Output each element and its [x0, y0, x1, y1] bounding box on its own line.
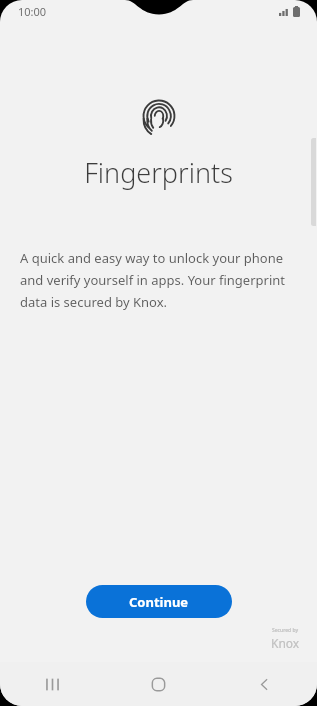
- other: Fingerprint: [142, 99, 176, 133]
- button[interactable]: Back: [211, 662, 317, 706]
- staticText: Secured by: [272, 627, 299, 634]
- staticText: 10:00: [18, 4, 47, 19]
- button[interactable]: Home: [105, 662, 211, 706]
- staticText: Knox: [271, 635, 300, 651]
- staticText: Continue: [129, 593, 189, 611]
- staticText: A quick and easy way to unlock your phon…: [20, 249, 301, 311]
- button[interactable]: Recent apps: [0, 662, 105, 706]
- button[interactable]: Continue: [86, 585, 232, 618]
- staticText: Fingerprints: [0, 154, 317, 191]
